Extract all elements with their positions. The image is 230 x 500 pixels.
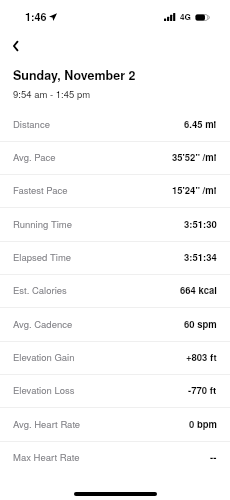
staticText: Avg. Pace bbox=[13, 150, 56, 164]
staticText: Est. Calories bbox=[13, 283, 67, 297]
staticText: 6.45 mi bbox=[184, 117, 217, 131]
staticText: 0 bpm bbox=[189, 417, 217, 431]
button[interactable]: Est. Calories bbox=[0, 275, 230, 308]
button[interactable]: Max Heart Rate bbox=[0, 442, 230, 475]
button[interactable]: Fastest Pace bbox=[0, 175, 230, 208]
staticText: Fastest Pace bbox=[13, 183, 68, 197]
button[interactable]: Elevation Loss bbox=[0, 375, 230, 408]
staticText: 4G bbox=[180, 11, 191, 23]
staticText: Distance bbox=[13, 117, 50, 131]
button[interactable]: Back bbox=[0, 34, 36, 58]
button[interactable]: Running Time bbox=[0, 209, 230, 242]
staticText: Avg. Cadence bbox=[13, 317, 73, 331]
staticText: Avg. Heart Rate bbox=[13, 417, 81, 431]
button[interactable]: Avg. Heart Rate bbox=[0, 409, 230, 442]
button[interactable]: Avg. Cadence bbox=[0, 309, 230, 342]
button[interactable]: Avg. Pace bbox=[0, 142, 230, 175]
staticText: Running Time bbox=[13, 217, 73, 231]
staticText: Sunday, November 2 bbox=[13, 66, 136, 84]
staticText: 35'52'' /mi bbox=[172, 150, 217, 164]
staticText: 3:51:34 bbox=[184, 250, 217, 264]
staticText: 3:51:30 bbox=[184, 217, 217, 231]
staticText: 60 spm bbox=[184, 317, 217, 331]
button[interactable]: Elevation Gain bbox=[0, 342, 230, 375]
staticText: +803 ft bbox=[186, 350, 217, 364]
staticText: -770 ft bbox=[188, 383, 217, 397]
staticText: Elevation Gain bbox=[13, 350, 75, 364]
staticText: Elevation Loss bbox=[13, 383, 75, 397]
staticText: Max Heart Rate bbox=[13, 450, 80, 464]
button[interactable]: Elapsed Time bbox=[0, 242, 230, 275]
staticText: Elapsed Time bbox=[13, 250, 72, 264]
staticText: 1:46 bbox=[25, 9, 47, 24]
staticText: 664 kcal bbox=[180, 283, 217, 297]
staticText: -- bbox=[210, 450, 217, 464]
staticText: 15'24'' /mi bbox=[172, 183, 217, 197]
button[interactable]: Distance bbox=[0, 109, 230, 142]
staticText: 9:54 am - 1:45 pm bbox=[13, 87, 91, 101]
